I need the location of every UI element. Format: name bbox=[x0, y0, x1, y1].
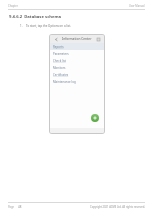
staticText: User Manual bbox=[129, 4, 145, 8]
button[interactable]: Monitors bbox=[50, 64, 104, 71]
staticText: Page bbox=[8, 205, 15, 209]
button[interactable]: Certificates bbox=[50, 71, 104, 78]
staticText: To start, tap the Options on a list. bbox=[26, 24, 71, 28]
staticText: Copyright 2021 ACME Ltd. All rights rese… bbox=[90, 205, 145, 209]
button[interactable]: Parameters bbox=[50, 50, 104, 57]
staticText: Certificates bbox=[53, 73, 69, 77]
staticText: Check list bbox=[53, 59, 66, 63]
button[interactable]: Reports bbox=[50, 43, 104, 50]
staticText: Chapter bbox=[8, 4, 18, 8]
staticText: Information Center bbox=[62, 37, 92, 41]
button[interactable]: Maintenance log bbox=[50, 78, 104, 85]
staticText: Parameters bbox=[53, 52, 69, 56]
button[interactable]: Add bbox=[91, 114, 99, 122]
staticText: Reports bbox=[53, 45, 64, 49]
button[interactable]: Options bbox=[95, 36, 101, 42]
staticText: 1. bbox=[20, 24, 23, 28]
staticText: 48 bbox=[18, 205, 22, 209]
button[interactable]: Check list bbox=[50, 57, 104, 64]
button[interactable]: Back bbox=[53, 36, 59, 42]
staticText: 9.4.6.2 Database schema bbox=[9, 14, 62, 20]
staticText: Maintenance log bbox=[53, 80, 76, 84]
staticText: Monitors bbox=[53, 66, 66, 70]
